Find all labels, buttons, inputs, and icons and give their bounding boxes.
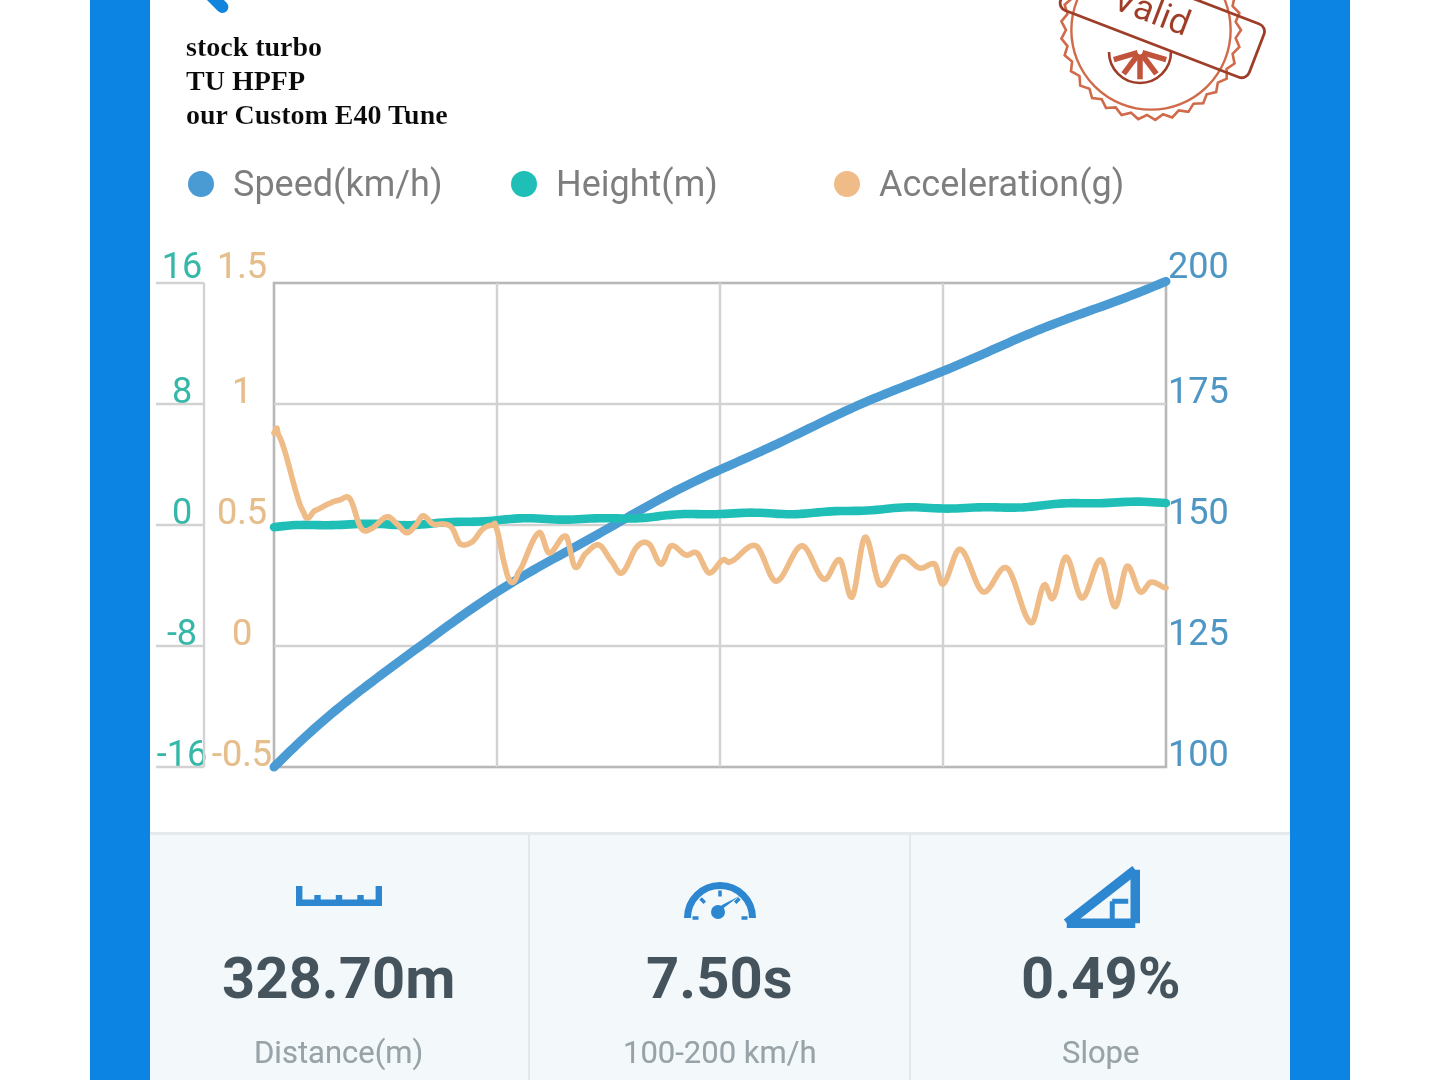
button[interactable]: Height(m) [511, 160, 718, 208]
staticText: 100-200 km/h [623, 1034, 817, 1070]
staticText: 0.5 [182, 491, 302, 533]
staticText: Slope [1062, 1034, 1140, 1070]
staticText: Height(m) [556, 163, 718, 205]
staticText: 0 [122, 491, 242, 533]
staticText: 150 [1168, 491, 1308, 533]
staticText: 0 [182, 612, 302, 654]
button[interactable]: Speed(km/h) [188, 160, 443, 208]
staticText: 175 [1168, 370, 1308, 412]
staticText: Acceleration(g) [879, 163, 1125, 205]
staticText: -0.5 [182, 733, 302, 775]
button[interactable]: Back [184, 0, 232, 7]
staticText: 328.70m [222, 944, 456, 1012]
staticText: 200 [1168, 245, 1308, 287]
staticText: 8 [122, 370, 242, 412]
staticText: 16 [122, 245, 242, 287]
staticText: TU HPFP [186, 65, 305, 96]
staticText: 0.49% [1021, 944, 1181, 1012]
staticText: 1.5 [182, 245, 302, 287]
staticText: Distance(m) [254, 1034, 424, 1070]
button[interactable]: 0.49% [911, 835, 1290, 1080]
staticText: 7.50s [646, 944, 793, 1012]
staticText: stock turbo [186, 31, 323, 62]
staticText: -16 [122, 733, 242, 775]
button[interactable]: 7.50s [530, 835, 909, 1080]
staticText: 1 [182, 370, 302, 412]
staticText: Speed(km/h) [233, 163, 443, 205]
staticText: 125 [1168, 612, 1308, 654]
button[interactable]: 328.70m [150, 835, 528, 1080]
staticText: Valid [1107, 0, 1197, 45]
button[interactable]: Acceleration(g) [834, 160, 1125, 208]
staticText: 100 [1168, 733, 1308, 775]
staticText: -8 [122, 612, 242, 654]
staticText: our Custom E40 Tune [186, 99, 448, 130]
